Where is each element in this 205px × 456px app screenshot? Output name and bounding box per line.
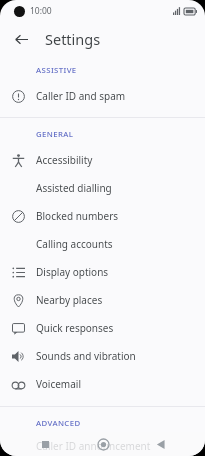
button[interactable]: Caller ID announcement: [0, 435, 205, 456]
staticText: Nearby places: [36, 293, 103, 307]
staticText: Quick responses: [36, 321, 114, 335]
button[interactable]: Nearby places: [0, 286, 205, 314]
staticText: Settings: [45, 29, 101, 49]
button[interactable]: Recent apps: [32, 432, 58, 456]
staticText: ASSISTIVE: [36, 65, 77, 76]
button[interactable]: Sounds and vibration: [0, 342, 205, 370]
staticText: Assisted dialling: [36, 181, 112, 195]
button[interactable]: Display options: [0, 258, 205, 286]
staticText: GENERAL: [36, 129, 74, 140]
staticText: Calling accounts: [36, 237, 113, 251]
staticText: Display options: [36, 265, 109, 279]
button[interactable]: Calling accounts: [0, 230, 205, 258]
staticText: ADVANCED: [36, 418, 81, 429]
staticText: Accessibility: [36, 153, 93, 167]
button[interactable]: Blocked numbers: [0, 202, 205, 230]
staticText: 10:00: [30, 5, 52, 17]
button[interactable]: Back: [9, 27, 33, 51]
button[interactable]: Caller ID and spam: [0, 82, 205, 110]
button[interactable]: Voicemail: [0, 370, 205, 398]
button[interactable]: Back: [147, 432, 173, 456]
button[interactable]: Accessibility: [0, 146, 205, 174]
button[interactable]: Assisted dialling: [0, 174, 205, 202]
staticText: Blocked numbers: [36, 209, 119, 223]
button[interactable]: Quick responses: [0, 314, 205, 342]
staticText: Caller ID announcement: [36, 439, 151, 453]
button[interactable]: Home: [90, 432, 116, 456]
staticText: Caller ID and spam: [36, 89, 126, 103]
staticText: Voicemail: [36, 377, 81, 391]
staticText: Sounds and vibration: [36, 349, 136, 363]
